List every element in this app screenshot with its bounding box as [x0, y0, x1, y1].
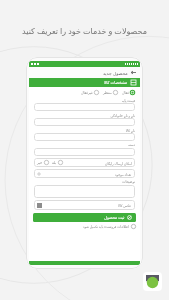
- button[interactable]: [34, 118, 135, 126]
- button[interactable]: مشخصات کالا: [29, 78, 140, 87]
- staticText: فعال: [122, 91, 129, 95]
- button[interactable]: [34, 148, 135, 156]
- staticText: غیرفعال: [81, 91, 93, 95]
- staticText: تعداد موجود: [115, 172, 132, 176]
- button[interactable]: غیرفعال: [81, 90, 99, 95]
- staticText: منتظر: [103, 91, 112, 95]
- button[interactable]: فعال: [122, 90, 135, 95]
- staticText: نام و نام خانوادگی: [34, 113, 135, 117]
- staticText: محصولات و خدمات خود را تعریف کنید: [6, 25, 163, 36]
- staticText: توضیحات: [34, 180, 135, 184]
- button[interactable]: خیر: [37, 160, 49, 165]
- staticText: مشخصات کالا: [104, 80, 128, 85]
- staticText: قیمت پایه: [34, 98, 135, 102]
- other: Back: [131, 70, 136, 75]
- staticText: بله: [52, 161, 57, 165]
- staticText: امکان ارسال رایگان: [105, 161, 132, 165]
- button[interactable]: [34, 103, 135, 111]
- staticText: عکس کالا: [118, 203, 132, 207]
- staticText: خیر: [37, 161, 43, 165]
- button[interactable]: [34, 133, 135, 141]
- button[interactable]: محصول جدید: [29, 67, 140, 78]
- other: Add: [37, 172, 41, 176]
- staticText: محصول جدید: [103, 70, 128, 76]
- other: Info: [131, 224, 136, 229]
- button[interactable]: منتظر: [103, 90, 118, 95]
- button[interactable]: [34, 185, 135, 198]
- staticText: اطلاعات فروشنده باید تکمیل شود: [83, 224, 129, 228]
- staticText: نام کالا: [34, 128, 135, 132]
- other: App logo: [143, 272, 162, 291]
- button[interactable]: بله: [52, 160, 63, 165]
- staticText: دسته: [34, 143, 135, 147]
- button[interactable]: اطلاعات فروشنده باید تکمیل شود: [33, 222, 136, 230]
- button[interactable]: Photo: [34, 200, 135, 210]
- button[interactable]: ثبت محصول: [33, 213, 136, 222]
- staticText: ثبت محصول: [104, 215, 125, 220]
- button[interactable]: Add: [34, 169, 135, 178]
